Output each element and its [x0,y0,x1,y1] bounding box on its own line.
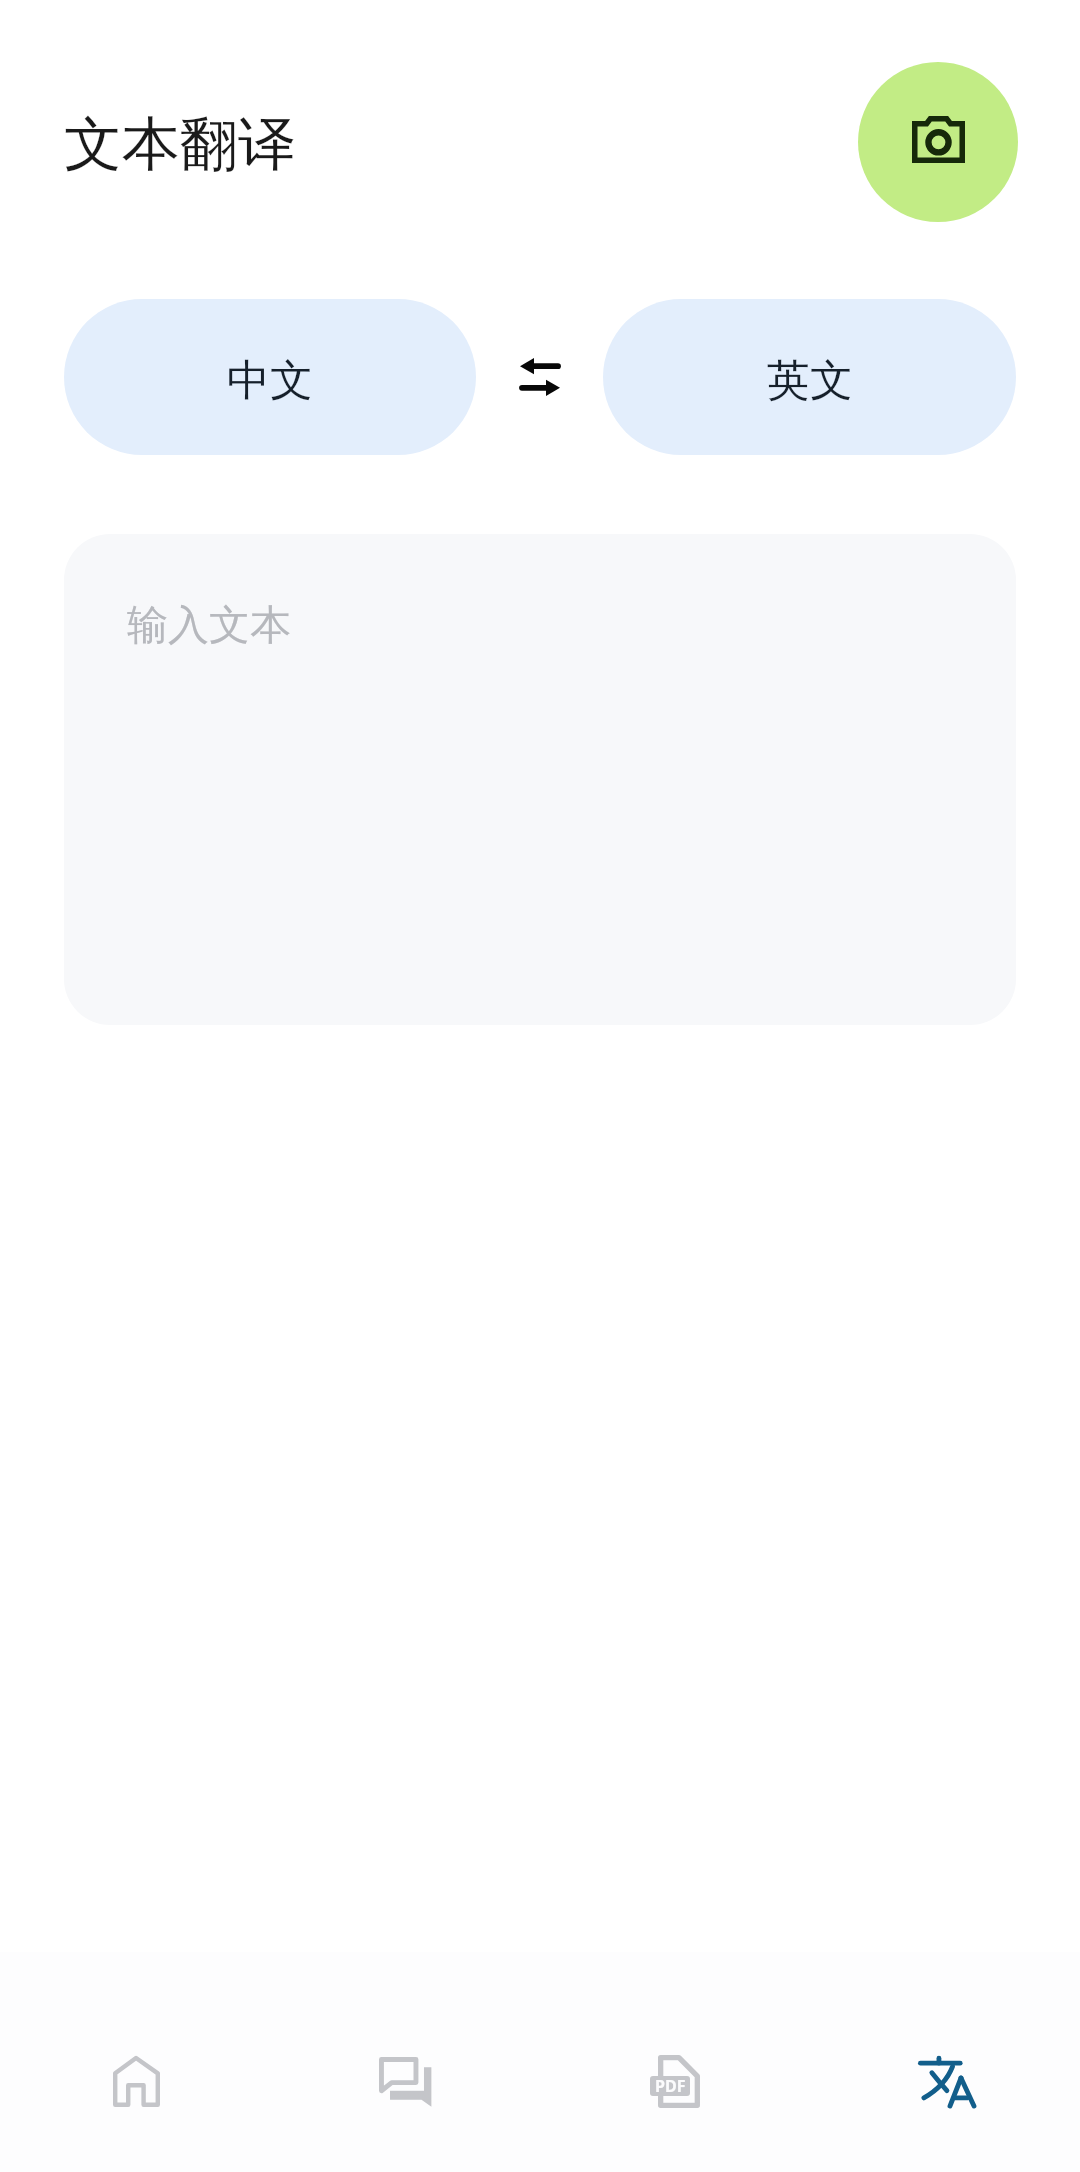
button[interactable]: 交换语言 [476,299,603,455]
button[interactable]: 文本翻译 [810,1952,1080,2172]
button[interactable]: 拍照翻译 [858,62,1018,222]
staticText: 输入文本 [127,600,291,652]
button[interactable]: PDF [540,1952,810,2172]
staticText: 中文 [227,354,313,408]
button[interactable]: 英文 [603,299,1016,455]
staticText: 文本翻译 [64,108,296,181]
staticText: PDF [655,2076,686,2095]
staticText: 英文 [767,354,853,408]
button[interactable]: 对话 [270,1952,540,2172]
button[interactable]: 首页 [0,1952,270,2172]
button[interactable]: 输入文本 [64,534,1016,1025]
button[interactable]: 中文 [64,299,476,455]
